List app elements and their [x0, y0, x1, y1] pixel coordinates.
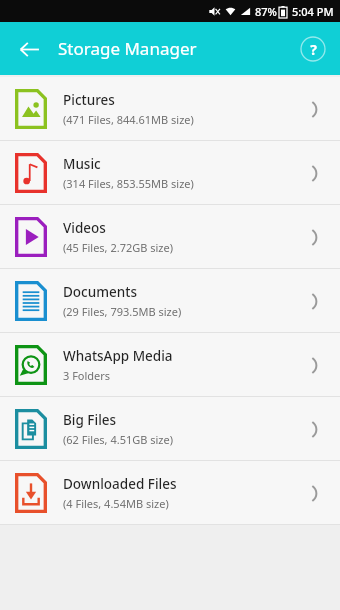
staticText: (29 Files, 793.5MB size) — [63, 304, 182, 319]
button[interactable]: Music — [0, 141, 340, 205]
staticText: 3 Folders — [63, 368, 111, 383]
staticText: (45 Files, 2.72GB size) — [63, 240, 174, 255]
staticText: 5:04 PM — [292, 4, 334, 19]
button[interactable]: Downloaded Files — [0, 461, 340, 525]
staticText: Documents — [63, 283, 137, 301]
staticText: WhatsApp Media — [63, 347, 173, 365]
button[interactable]: WhatsApp Media — [0, 333, 340, 397]
staticText: ? — [310, 40, 317, 59]
staticText: (4 Files, 4.54MB size) — [63, 496, 169, 511]
staticText: Music — [63, 155, 101, 173]
button[interactable]: Big Files — [0, 397, 340, 461]
staticText: (314 Files, 853.55MB size) — [63, 176, 194, 191]
staticText: (62 Files, 4.51GB size) — [63, 432, 174, 447]
staticText: (471 Files, 844.61MB size) — [63, 112, 194, 127]
staticText: Big Files — [63, 411, 117, 429]
staticText: Storage Manager — [58, 37, 197, 60]
button[interactable]: Videos — [0, 205, 340, 269]
staticText: Pictures — [63, 91, 115, 109]
button[interactable]: Back — [14, 34, 44, 64]
button[interactable]: Help — [300, 36, 326, 62]
staticText: 87% — [255, 4, 277, 19]
button[interactable]: Documents — [0, 269, 340, 333]
staticText: Videos — [63, 219, 106, 237]
button[interactable]: Pictures — [0, 77, 340, 141]
staticText: Downloaded Files — [63, 475, 177, 493]
